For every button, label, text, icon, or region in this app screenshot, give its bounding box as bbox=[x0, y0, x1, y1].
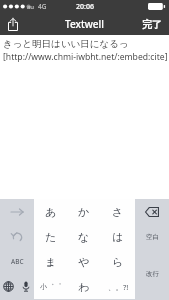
staticText: た bbox=[45, 230, 57, 244]
staticText: あ bbox=[45, 205, 57, 219]
staticText: 完了 bbox=[142, 18, 162, 31]
staticText: 、。?! bbox=[108, 282, 129, 292]
button[interactable]: Dictation bbox=[17, 274, 34, 299]
staticText: [http://www.chmi-iwbht.net/:embed:cite] bbox=[3, 51, 168, 63]
staticText: か bbox=[78, 205, 90, 219]
staticText: ら bbox=[112, 255, 124, 269]
button[interactable]: た bbox=[34, 224, 67, 249]
staticText: 4G bbox=[38, 2, 47, 11]
staticText: 20:06 bbox=[76, 2, 94, 12]
staticText: きっと明日はいい日になるっ bbox=[3, 38, 129, 50]
button[interactable]: 完了 bbox=[135, 13, 169, 35]
staticText: わ bbox=[78, 280, 90, 294]
staticText: さ bbox=[112, 205, 124, 219]
staticText: ABC bbox=[11, 257, 24, 266]
staticText: au bbox=[27, 3, 35, 11]
staticText: や bbox=[78, 255, 90, 269]
button[interactable]: ま bbox=[34, 249, 67, 274]
button[interactable]: 小゛゜ bbox=[34, 274, 67, 299]
button[interactable]: 改行 bbox=[135, 249, 169, 299]
button[interactable]: は bbox=[101, 224, 135, 249]
button[interactable]: 、。?! bbox=[101, 274, 135, 299]
button[interactable]: Switch keyboard bbox=[0, 274, 17, 299]
button[interactable]: か bbox=[67, 199, 101, 224]
button[interactable]: Next candidate bbox=[0, 199, 34, 224]
button[interactable]: さ bbox=[101, 199, 135, 224]
button[interactable]: Share bbox=[2, 13, 24, 35]
button[interactable]: ABC bbox=[0, 249, 34, 274]
staticText: は bbox=[112, 230, 124, 244]
button[interactable]: あ bbox=[34, 199, 67, 224]
button[interactable]: 空白 bbox=[135, 224, 169, 249]
staticText: 小゛゜ bbox=[40, 282, 62, 291]
staticText: Textwell bbox=[65, 17, 104, 31]
button[interactable]: や bbox=[67, 249, 101, 274]
button[interactable]: Delete bbox=[135, 199, 169, 224]
button[interactable]: わ bbox=[67, 274, 101, 299]
staticText: ま bbox=[45, 255, 57, 269]
staticText: な bbox=[78, 230, 90, 244]
button[interactable]: な bbox=[67, 224, 101, 249]
staticText: 空白 bbox=[146, 233, 159, 241]
button[interactable]: Undo bbox=[0, 224, 34, 249]
staticText: 改行 bbox=[146, 270, 159, 278]
button[interactable]: ら bbox=[101, 249, 135, 274]
